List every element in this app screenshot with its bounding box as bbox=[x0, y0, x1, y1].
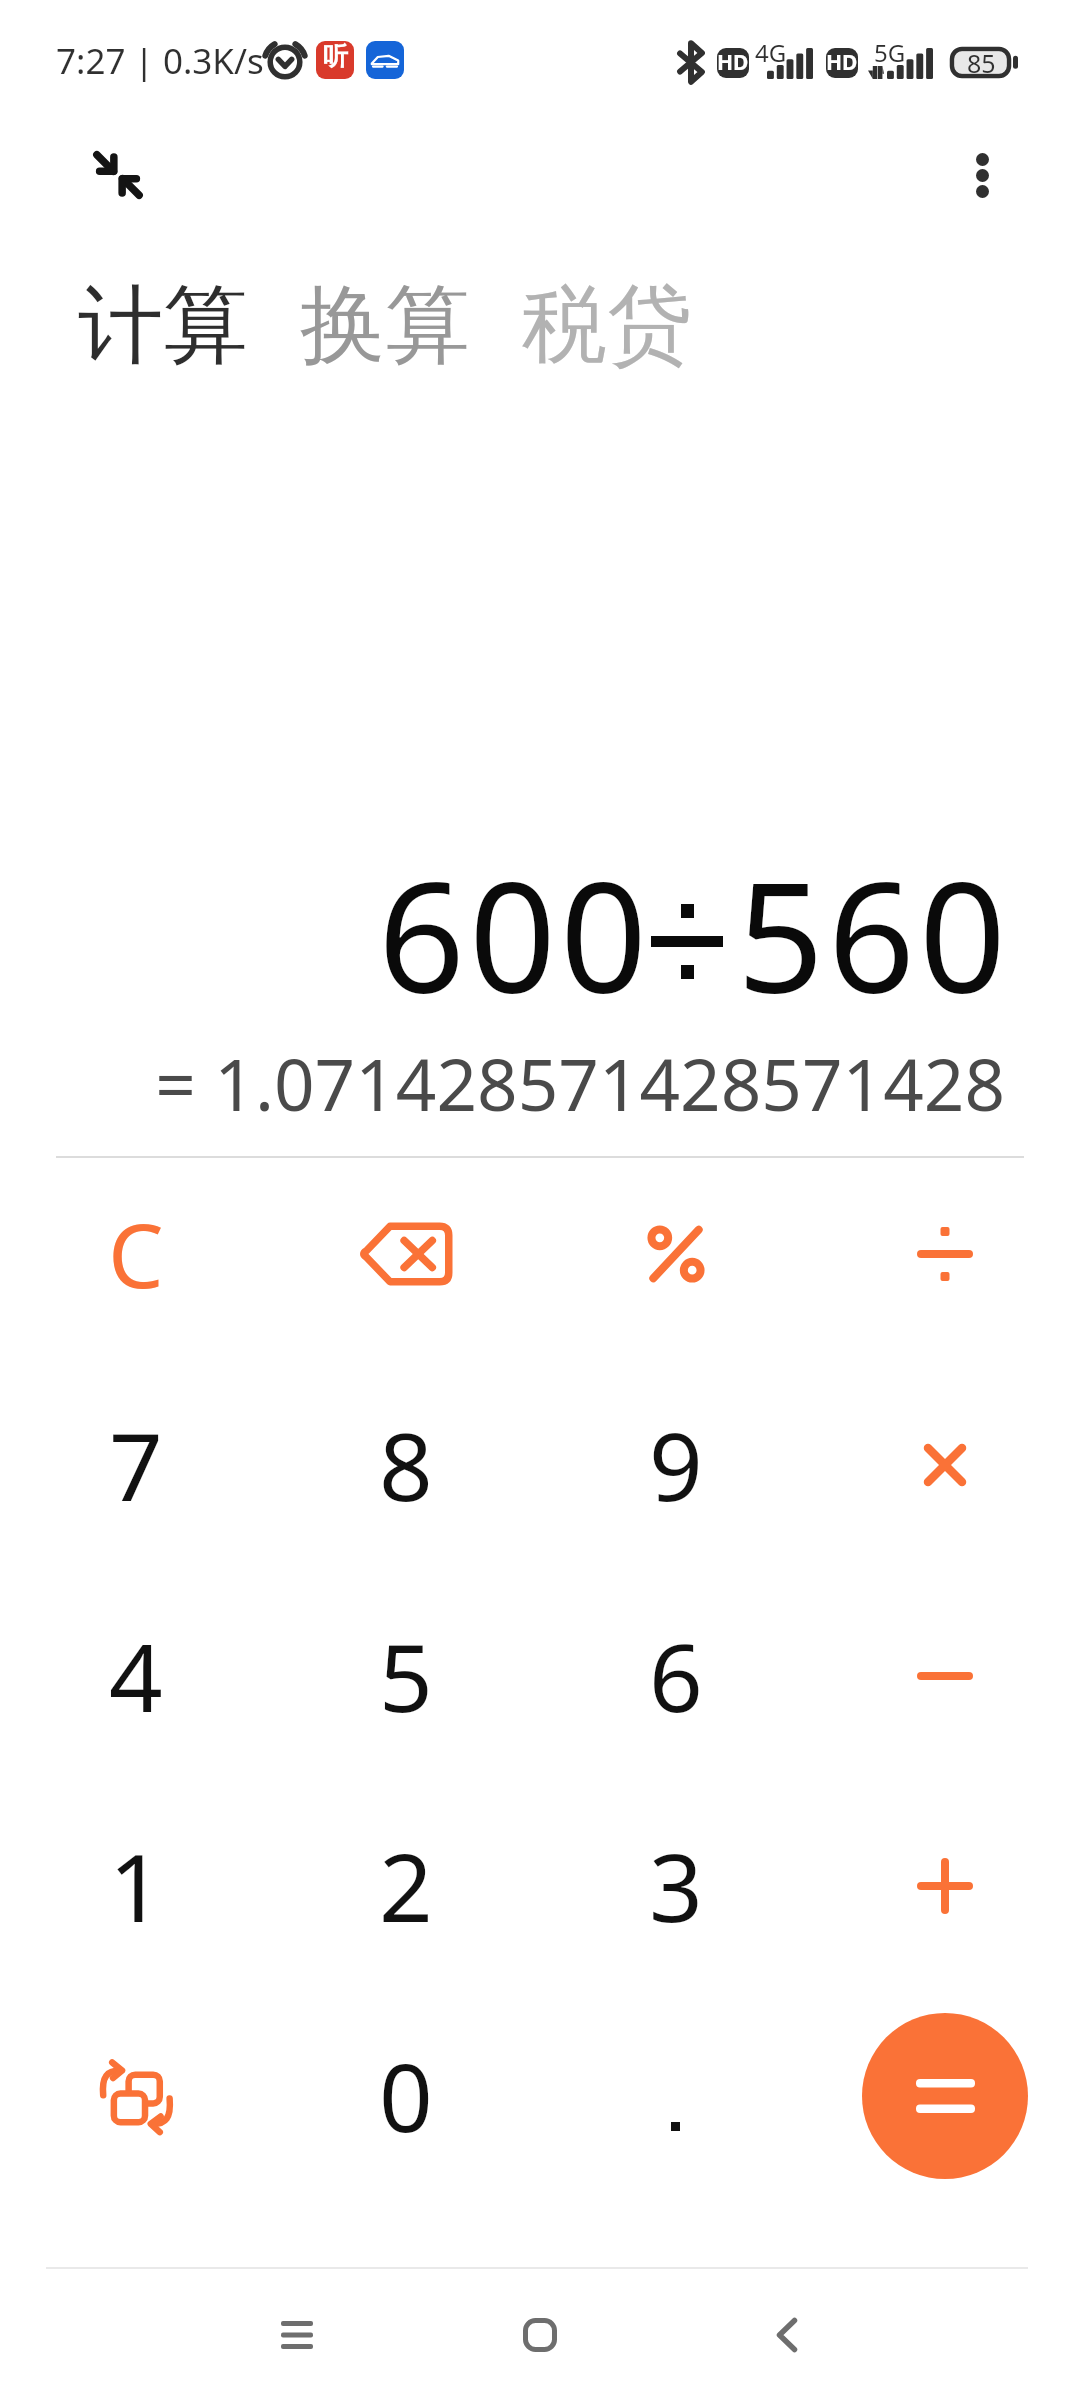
staticText: 7:27 | 0.3K/s bbox=[56, 37, 264, 85]
staticText: 5 bbox=[379, 1612, 433, 1740]
staticText: 0 bbox=[379, 2032, 433, 2160]
button[interactable]: Collapse bbox=[28, 85, 208, 265]
button[interactable]: Minus bbox=[845, 1576, 1045, 1776]
button[interactable]: 9 bbox=[576, 1365, 776, 1565]
button[interactable]: Convert bbox=[36, 1996, 236, 2196]
staticText: 4 bbox=[109, 1612, 163, 1740]
button[interactable]: More options bbox=[892, 85, 1072, 265]
button[interactable]: Home bbox=[475, 2270, 605, 2400]
button[interactable]: Clear bbox=[36, 1154, 236, 1354]
staticText: 7 bbox=[109, 1401, 163, 1529]
staticText: = 1.071428571428571428 bbox=[155, 1035, 1005, 1132]
button[interactable]: 6 bbox=[576, 1576, 776, 1776]
staticText: 8 bbox=[379, 1401, 433, 1529]
button[interactable]: 5 bbox=[306, 1576, 506, 1776]
button[interactable]: Equals bbox=[862, 2013, 1028, 2179]
staticText: 听 bbox=[323, 41, 348, 72]
staticText: 税贷 bbox=[522, 272, 692, 379]
button[interactable]: Percent bbox=[576, 1154, 776, 1354]
staticText: 换算 bbox=[300, 272, 470, 379]
staticText: 9 bbox=[649, 1401, 703, 1529]
staticText: 85 bbox=[967, 46, 996, 77]
staticText: 560 bbox=[737, 830, 1010, 1037]
button[interactable]: Recents bbox=[232, 2270, 362, 2400]
button[interactable]: 4 bbox=[36, 1576, 236, 1776]
staticText: 6 bbox=[649, 1612, 703, 1740]
button[interactable]: 计算 bbox=[78, 272, 248, 379]
staticText: 3 bbox=[649, 1822, 703, 1950]
button[interactable]: Multiply bbox=[845, 1365, 1045, 1565]
staticText: HD bbox=[826, 48, 858, 77]
button[interactable]: 2 bbox=[306, 1786, 506, 1986]
button[interactable]: Back bbox=[722, 2270, 852, 2400]
button[interactable]: 1 bbox=[36, 1786, 236, 1986]
button[interactable]: Decimal point bbox=[576, 1996, 776, 2196]
staticText: C bbox=[108, 1194, 164, 1314]
button[interactable]: 8 bbox=[306, 1365, 506, 1565]
staticText: 4G bbox=[755, 36, 787, 69]
staticText: 1 bbox=[109, 1822, 163, 1950]
button[interactable]: Backspace bbox=[306, 1154, 506, 1354]
staticText: 5G bbox=[874, 36, 906, 69]
staticText: HD bbox=[717, 48, 749, 77]
button[interactable]: 换算 bbox=[300, 272, 470, 379]
button[interactable]: 3 bbox=[576, 1786, 776, 1986]
staticText: 计算 bbox=[78, 272, 248, 379]
button[interactable]: 7 bbox=[36, 1365, 236, 1565]
button[interactable]: Divide bbox=[845, 1154, 1045, 1354]
staticText: 2 bbox=[379, 1822, 433, 1950]
button[interactable]: Plus bbox=[845, 1786, 1045, 1986]
staticText: 600 bbox=[378, 830, 651, 1037]
button[interactable]: 税贷 bbox=[522, 272, 692, 379]
button[interactable]: 0 bbox=[306, 1996, 506, 2196]
